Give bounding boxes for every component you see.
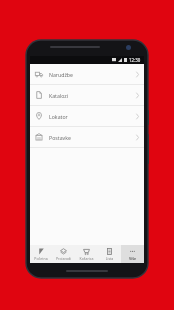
button[interactable]: Proizvodi bbox=[52, 245, 75, 263]
staticText: Početna bbox=[30, 256, 52, 261]
button[interactable]: Više bbox=[121, 245, 144, 263]
staticText: 12:30 bbox=[129, 57, 141, 63]
staticText: Više bbox=[121, 256, 144, 261]
button[interactable]: Lista bbox=[98, 245, 121, 263]
staticText: Postavke bbox=[49, 134, 71, 141]
button[interactable]: Katalozi bbox=[30, 85, 144, 106]
button[interactable]: Postavke bbox=[30, 127, 144, 148]
staticText: Narudžbe bbox=[49, 71, 73, 78]
staticText: Proizvodi bbox=[52, 256, 75, 261]
button[interactable]: Lokator bbox=[30, 106, 144, 127]
staticText: Lista bbox=[98, 256, 121, 261]
staticText: Košarica bbox=[75, 256, 98, 261]
staticText: Lokator bbox=[49, 113, 68, 120]
button[interactable]: Košarica bbox=[75, 245, 98, 263]
staticText: Katalozi bbox=[49, 92, 69, 99]
button[interactable]: Narudžbe bbox=[30, 64, 144, 85]
button[interactable]: Početna bbox=[30, 245, 52, 263]
